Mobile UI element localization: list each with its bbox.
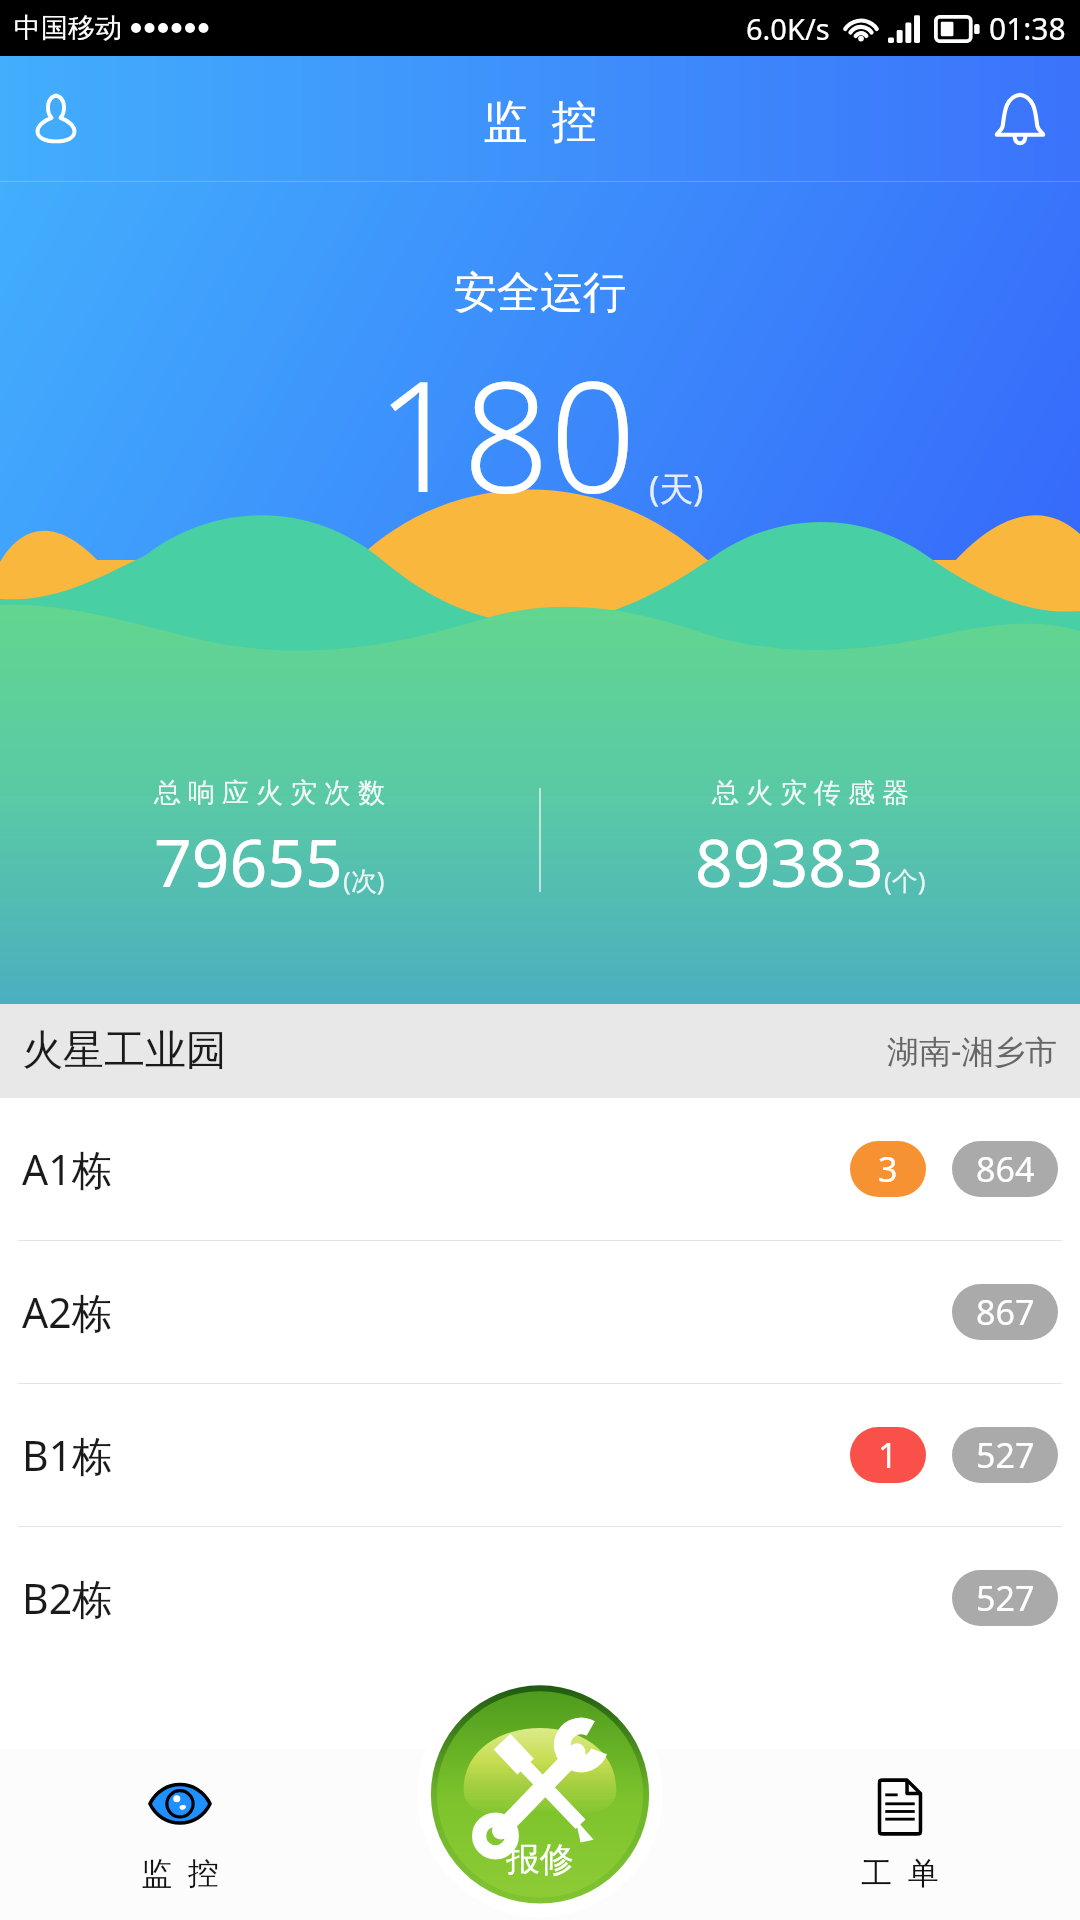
button[interactable]: A2栋 bbox=[0, 1241, 1080, 1383]
staticText: 79655 bbox=[154, 816, 343, 906]
button[interactable]: 报修 Repair request bbox=[416, 1668, 664, 1916]
button[interactable]: B1栋 bbox=[0, 1384, 1080, 1526]
staticText: A2栋 bbox=[22, 1284, 113, 1340]
staticText: 中国移动 bbox=[14, 11, 122, 45]
staticText: (个) bbox=[884, 862, 926, 898]
button[interactable]: Monitoring bbox=[0, 1748, 360, 1920]
staticText: 89383 bbox=[695, 816, 884, 906]
staticText: 527 bbox=[976, 1575, 1035, 1621]
staticText: 监 控 bbox=[483, 89, 597, 150]
button[interactable]: Profile bbox=[12, 75, 100, 163]
staticText: 报修 bbox=[506, 1838, 574, 1881]
staticText: A1栋 bbox=[22, 1141, 113, 1197]
staticText: 监 控 bbox=[141, 1851, 220, 1893]
staticText: 867 bbox=[976, 1289, 1035, 1335]
button[interactable]: B2栋 bbox=[0, 1527, 1080, 1669]
button[interactable]: Work orders bbox=[720, 1748, 1080, 1920]
staticText: (次) bbox=[343, 862, 385, 898]
staticText: B2栋 bbox=[22, 1570, 114, 1626]
staticText: 180 bbox=[376, 330, 637, 537]
staticText: 湖南-湘乡市 bbox=[887, 1029, 1058, 1073]
staticText: 火星工业园 bbox=[22, 1025, 227, 1077]
staticText: (天) bbox=[649, 465, 704, 511]
button[interactable]: Notifications bbox=[976, 75, 1064, 163]
staticText: 6.0K/s bbox=[746, 9, 830, 48]
button[interactable]: 火星工业园 bbox=[0, 1004, 1080, 1098]
staticText: 总 响 应 火 灾 次 数 bbox=[154, 773, 386, 810]
staticText: 1 bbox=[878, 1432, 898, 1478]
staticText: 工 单 bbox=[861, 1851, 940, 1893]
staticText: B1栋 bbox=[22, 1427, 114, 1483]
staticText: 3 bbox=[878, 1146, 898, 1192]
staticText: 安全运行 bbox=[454, 266, 626, 320]
staticText: 864 bbox=[976, 1146, 1035, 1192]
staticText: 527 bbox=[976, 1432, 1035, 1478]
staticText: 01:38 bbox=[989, 8, 1066, 49]
button[interactable]: A1栋 bbox=[0, 1098, 1080, 1240]
staticText: 总 火 灾 传 感 器 bbox=[712, 773, 910, 810]
